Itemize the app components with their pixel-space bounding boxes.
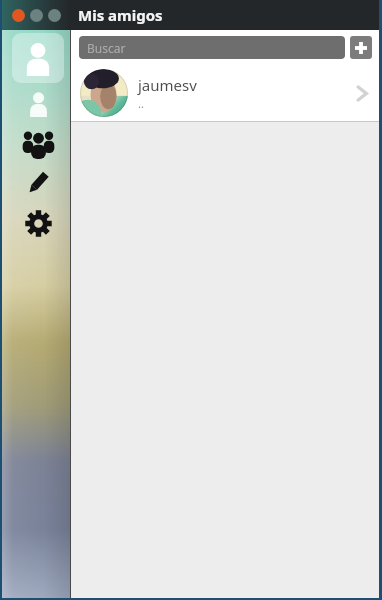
button[interactable]: Minimizar [30, 9, 43, 22]
button[interactable]: Maximizar [48, 9, 61, 22]
button[interactable]: jaumesv [71, 64, 379, 122]
button[interactable]: Amigos [12, 83, 64, 123]
button[interactable]: Editar [12, 163, 64, 203]
button[interactable]: Ajustes [12, 203, 64, 243]
button[interactable]: Buscar [79, 36, 345, 59]
button[interactable]: Añadir amigo [350, 36, 372, 59]
button[interactable]: Cerrar [12, 9, 25, 22]
button[interactable]: Grupos [12, 123, 64, 163]
staticText: Buscar [87, 40, 126, 56]
staticText: Mis amigos [78, 5, 163, 25]
button[interactable]: Mi perfil [12, 33, 64, 83]
staticText: jaumesv [138, 75, 197, 95]
staticText: .. [138, 96, 144, 111]
